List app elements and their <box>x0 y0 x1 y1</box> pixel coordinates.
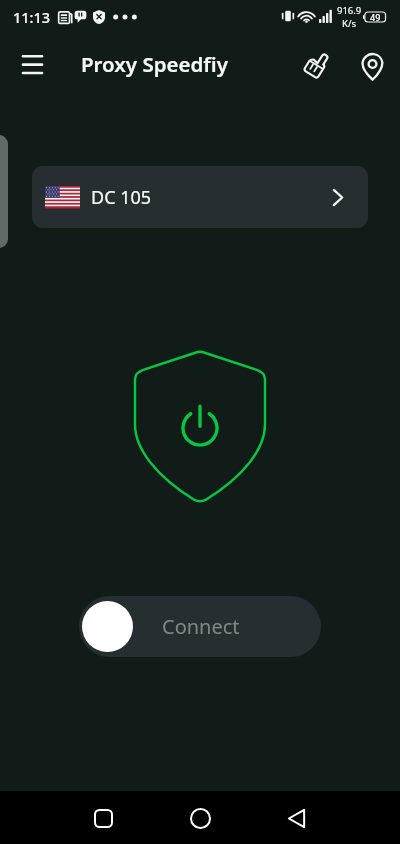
button[interactable]: Back <box>275 797 317 839</box>
button[interactable]: Clean <box>292 40 340 88</box>
button[interactable]: Home <box>179 797 221 839</box>
staticText: 11:13 <box>13 7 51 27</box>
button[interactable]: DC 105 <box>32 166 368 228</box>
button[interactable]: Open drawer <box>0 135 8 248</box>
staticText: K/s <box>342 17 356 30</box>
button[interactable]: Connect <box>79 596 321 657</box>
staticText: DC 105 <box>91 185 152 210</box>
button[interactable]: Recents <box>82 797 124 839</box>
staticText: 49 <box>370 11 381 23</box>
button[interactable]: Menu <box>8 40 56 88</box>
staticText: Connect <box>162 613 240 640</box>
staticText: 916.9 <box>337 4 362 17</box>
button[interactable]: Location <box>348 40 396 88</box>
staticText: Proxy Speedfiy <box>81 50 228 78</box>
